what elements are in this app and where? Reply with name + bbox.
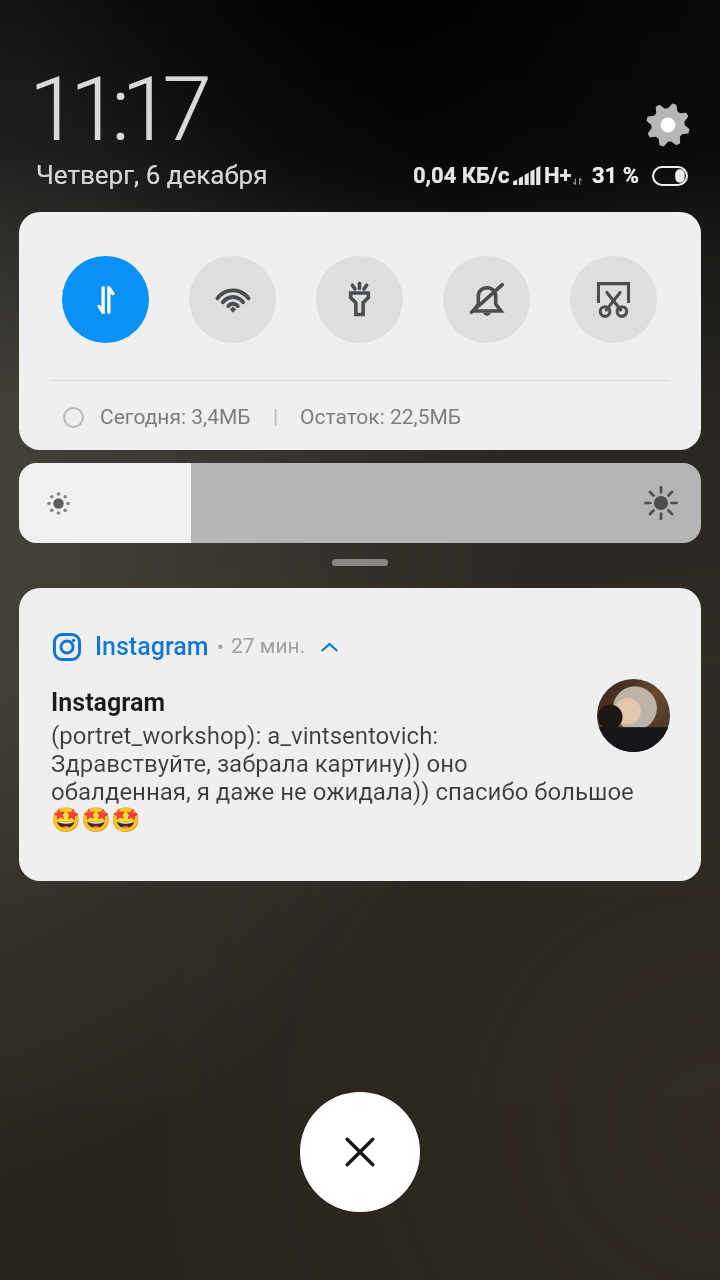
button[interactable]: Wi-Fi xyxy=(189,256,276,343)
button[interactable]: Instagram xyxy=(19,588,701,881)
button[interactable]: Brightness xyxy=(19,463,701,543)
staticText: 31 % xyxy=(592,163,639,189)
button[interactable]: Screenshot xyxy=(570,256,657,343)
staticText: Сегодня: 3,4МБ xyxy=(100,405,251,430)
staticText: | xyxy=(273,405,279,430)
button[interactable]: Settings xyxy=(640,97,696,153)
button[interactable]: Silent mode xyxy=(443,256,530,343)
staticText: Остаток: 22,5МБ xyxy=(300,405,462,430)
staticText: H+ xyxy=(544,163,572,189)
staticText: (portret_workshop): a_vintsentovich: Здр… xyxy=(51,722,634,806)
staticText: Instagram xyxy=(51,688,166,717)
staticText: Instagram xyxy=(95,632,209,661)
button[interactable]: Collapse xyxy=(317,635,341,659)
staticText: Четверг, 6 декабря xyxy=(36,160,268,190)
staticText: 11:17 xyxy=(29,57,204,161)
staticText: 0,04 КБ/c xyxy=(413,163,510,189)
button[interactable]: Сегодня: 3,4МБ xyxy=(19,393,701,441)
staticText: 27 мин. xyxy=(231,634,306,659)
button[interactable]: Close xyxy=(300,1092,420,1212)
staticText: 🤩🤩🤩 xyxy=(51,806,141,834)
button[interactable]: Flashlight xyxy=(316,256,403,343)
button[interactable]: Mobile data xyxy=(62,256,149,343)
staticText: • xyxy=(217,635,224,658)
